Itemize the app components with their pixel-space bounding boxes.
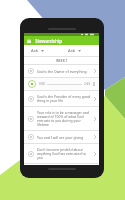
- staticText: WEEK 1: [56, 59, 68, 63]
- button[interactable]: Your role is to be a manager and steward…: [24, 107, 99, 130]
- staticText: 2:43: [84, 82, 90, 86]
- staticText: Your role is to be a manager and steward…: [37, 110, 92, 127]
- button[interactable]: Aab: [61, 45, 99, 56]
- staticText: 0:00: [39, 82, 45, 86]
- other: Play: [28, 80, 36, 88]
- button[interactable]: God is the Provider of every good thing …: [24, 91, 99, 106]
- staticText: You and I will see your giving: [37, 135, 92, 140]
- button[interactable]: Play: [24, 78, 99, 90]
- button[interactable]: Don't become prideful about anything God…: [24, 144, 99, 163]
- button[interactable]: Aab: [24, 45, 61, 56]
- staticText: God is the Owner of everything: [37, 69, 92, 74]
- other: More options: [93, 82, 95, 86]
- button[interactable]: Navigation menu: [24, 36, 33, 45]
- staticText: God is the Provider of every good thing …: [37, 94, 92, 103]
- staticText: Don't become prideful about anything God…: [37, 147, 92, 160]
- staticText: Aab: [68, 48, 76, 53]
- button[interactable]: You and I will see your giving: [24, 131, 99, 143]
- button[interactable]: God is the Owner of everything: [24, 65, 99, 77]
- staticText: Stewardship: [35, 38, 63, 44]
- staticText: Aab: [31, 48, 39, 53]
